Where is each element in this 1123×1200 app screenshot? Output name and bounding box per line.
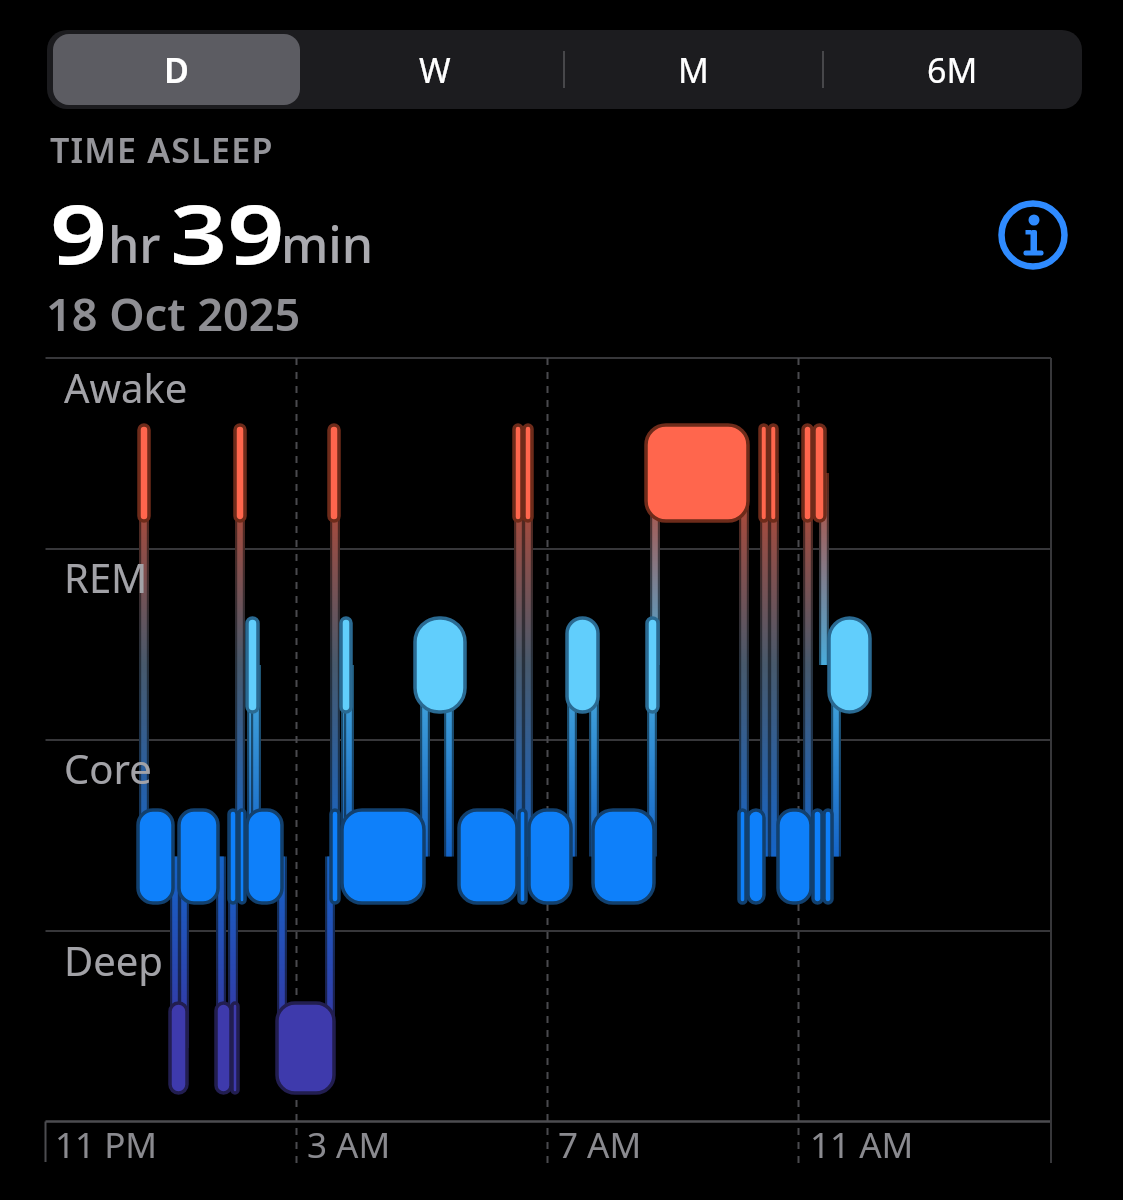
staticText: W: [419, 47, 451, 93]
staticText: D: [164, 47, 189, 93]
button[interactable]: D: [47, 30, 305, 109]
staticText: 9: [50, 176, 107, 288]
staticText: 6M: [927, 47, 978, 93]
button[interactable]: W: [305, 30, 564, 109]
staticText: 39: [170, 176, 285, 288]
staticText: Awake: [64, 360, 188, 414]
button[interactable]: 6M: [823, 30, 1082, 109]
staticText: REM: [64, 550, 148, 604]
staticText: Deep: [64, 933, 163, 987]
staticText: 11 AM: [810, 1121, 914, 1169]
staticText: Core: [64, 741, 152, 795]
staticText: 18 Oct 2025: [46, 283, 301, 344]
staticText: 3 AM: [307, 1121, 391, 1169]
staticText: min: [281, 210, 374, 278]
button[interactable]: [996, 198, 1070, 272]
button[interactable]: M: [564, 30, 823, 109]
staticText: TIME ASLEEP: [50, 127, 274, 173]
staticText: 7 AM: [558, 1121, 642, 1169]
staticText: M: [678, 47, 709, 93]
staticText: hr: [108, 210, 161, 278]
staticText: 11 PM: [55, 1121, 158, 1169]
